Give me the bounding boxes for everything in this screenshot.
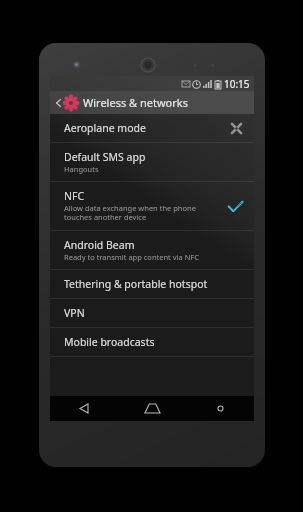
staticText: Tethering & portable hotspot bbox=[64, 277, 208, 291]
button[interactable]: Android Beam bbox=[50, 231, 254, 269]
staticText: Ready to transmit app content via NFC bbox=[64, 252, 199, 262]
button[interactable]: Back bbox=[50, 396, 118, 421]
button[interactable]: Aeroplane mode bbox=[50, 114, 254, 142]
staticText: NFC bbox=[64, 189, 85, 203]
staticText: Mobile broadcasts bbox=[64, 335, 155, 349]
button[interactable]: NFC bbox=[50, 182, 254, 230]
staticText: VPN bbox=[64, 306, 85, 320]
button[interactable]: Wireless & networks bbox=[50, 91, 254, 114]
button[interactable]: Recent apps bbox=[186, 396, 254, 421]
staticText: Hangouts bbox=[64, 164, 99, 174]
staticText: Allow data exchange when the phone touch… bbox=[64, 203, 196, 223]
other: Aeroplane mode off bbox=[230, 122, 243, 135]
staticText: Aeroplane mode bbox=[64, 121, 146, 135]
staticText: Default SMS app bbox=[64, 150, 146, 164]
staticText: Android Beam bbox=[64, 238, 135, 252]
button[interactable]: Default SMS app bbox=[50, 143, 254, 181]
staticText: Wireless & networks bbox=[83, 95, 188, 110]
other: NFC enabled bbox=[228, 200, 243, 213]
staticText: 10:15 bbox=[224, 77, 250, 91]
button[interactable]: VPN bbox=[50, 299, 254, 327]
button[interactable]: Tethering & portable hotspot bbox=[50, 270, 254, 298]
button[interactable]: Mobile broadcasts bbox=[50, 328, 254, 356]
button[interactable]: Home bbox=[118, 396, 186, 421]
